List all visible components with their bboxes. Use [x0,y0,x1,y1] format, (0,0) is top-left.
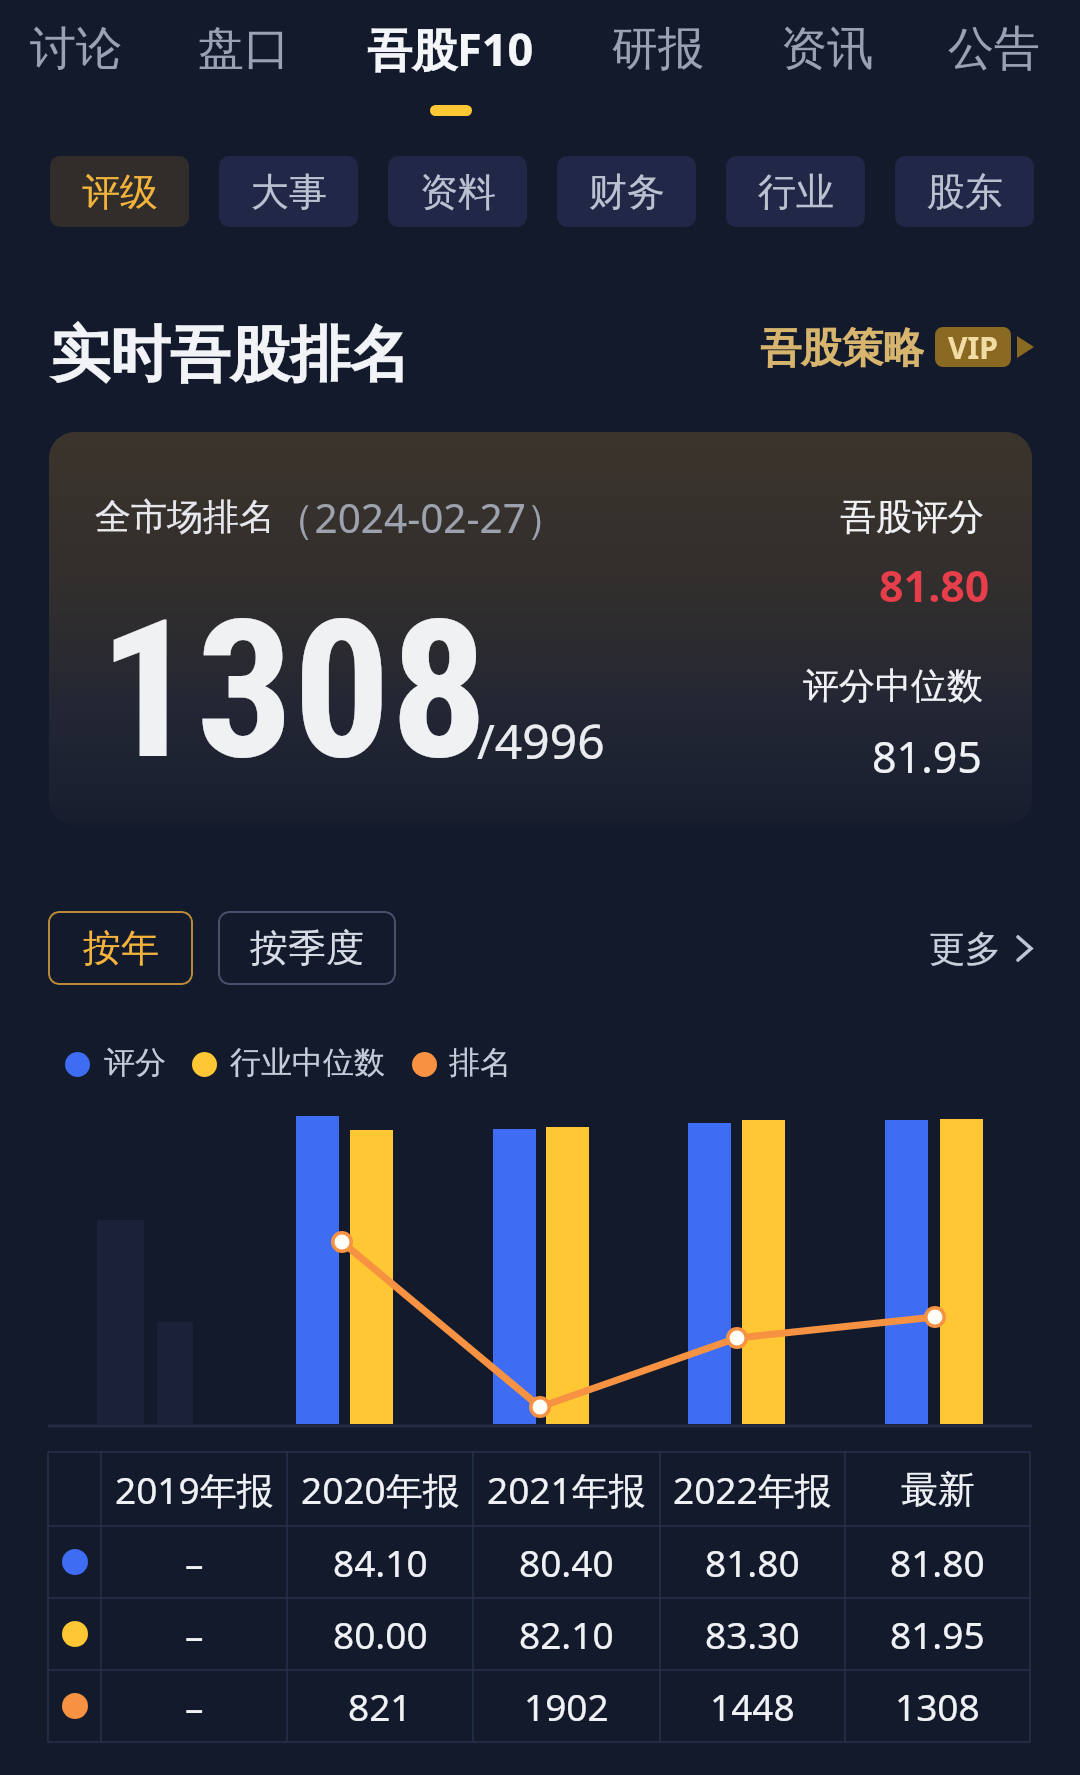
staticText: 资讯 [781,20,873,78]
staticText: 财务 [589,168,665,216]
staticText: 资料 [420,168,496,216]
staticText: 讨论 [30,20,122,78]
staticText: 1902 [524,1681,609,1731]
staticText: 82.10 [519,1609,614,1659]
button[interactable]: 研报 [588,0,728,128]
staticText: 更多 [929,926,1001,971]
button[interactable]: 行业中位数 [192,1045,385,1084]
button[interactable]: 排名 [412,1045,511,1084]
staticText: 2022年报 [673,1464,832,1515]
staticText: 81.80 [890,1537,985,1587]
button[interactable]: 吾股策略 VIP [760,323,1034,371]
staticText: 盘口 [198,20,290,78]
staticText: 行业 [758,168,834,216]
staticText: 2019年报 [115,1464,274,1515]
staticText: – [185,1537,204,1587]
staticText: 81.95 [872,727,982,786]
button[interactable]: 资讯 [757,0,897,128]
button[interactable]: 行业 [726,156,865,227]
staticText: 最新 [901,1466,975,1513]
staticText: 行业中位数 [230,1043,385,1082]
staticText: 2021年报 [487,1464,646,1515]
button[interactable]: 评级 [50,156,189,227]
staticText: 按年 [83,924,159,972]
staticText: 排名 [449,1043,511,1082]
staticText: 大事 [251,168,327,216]
button[interactable]: 公告 [924,0,1064,128]
button[interactable]: 评分 [65,1045,166,1084]
staticText: 84.10 [333,1537,428,1587]
button[interactable]: 盘口 [174,0,314,128]
staticText: 80.00 [333,1609,428,1659]
button[interactable]: 资料 [388,156,527,227]
staticText: /4996 [477,708,605,773]
staticText: 实时吾股排名 [50,317,410,393]
staticText: 研报 [612,20,704,78]
button[interactable]: 吾股F10 [340,0,560,128]
staticText: – [185,1681,204,1731]
staticText: 1448 [710,1681,795,1731]
staticText: 80.40 [519,1537,614,1587]
button[interactable]: 股东 [895,156,1034,227]
button[interactable]: 按季度 [218,911,396,985]
staticText: （2024-02-27） [274,490,567,545]
staticText: 吾股F10 [367,18,534,79]
staticText: 2020年报 [301,1464,460,1515]
button[interactable]: 财务 [557,156,696,227]
staticText: 全市场排名 [95,494,275,539]
staticText: 股东 [927,168,1003,216]
button[interactable]: 更多 [915,905,1033,975]
staticText: 评分 [104,1043,166,1082]
staticText: 评分中位数 [803,663,983,708]
button[interactable]: 大事 [219,156,358,227]
staticText: VIP [948,327,998,367]
staticText: 公告 [948,20,1040,78]
button[interactable]: 按年 [48,911,193,985]
staticText: 评级 [82,168,158,216]
staticText: 按季度 [250,924,364,972]
staticText: 吾股策略 [760,323,924,371]
staticText: – [185,1609,204,1659]
staticText: 81.95 [890,1609,985,1659]
staticText: 1308 [895,1681,980,1731]
staticText: 81.80 [879,556,990,615]
staticText: 1308 [99,578,488,803]
staticText: 吾股评分 [840,494,984,539]
staticText: 821 [348,1681,412,1731]
button[interactable]: 讨论 [6,0,146,128]
staticText: 81.80 [705,1537,800,1587]
staticText: 83.30 [705,1609,800,1659]
